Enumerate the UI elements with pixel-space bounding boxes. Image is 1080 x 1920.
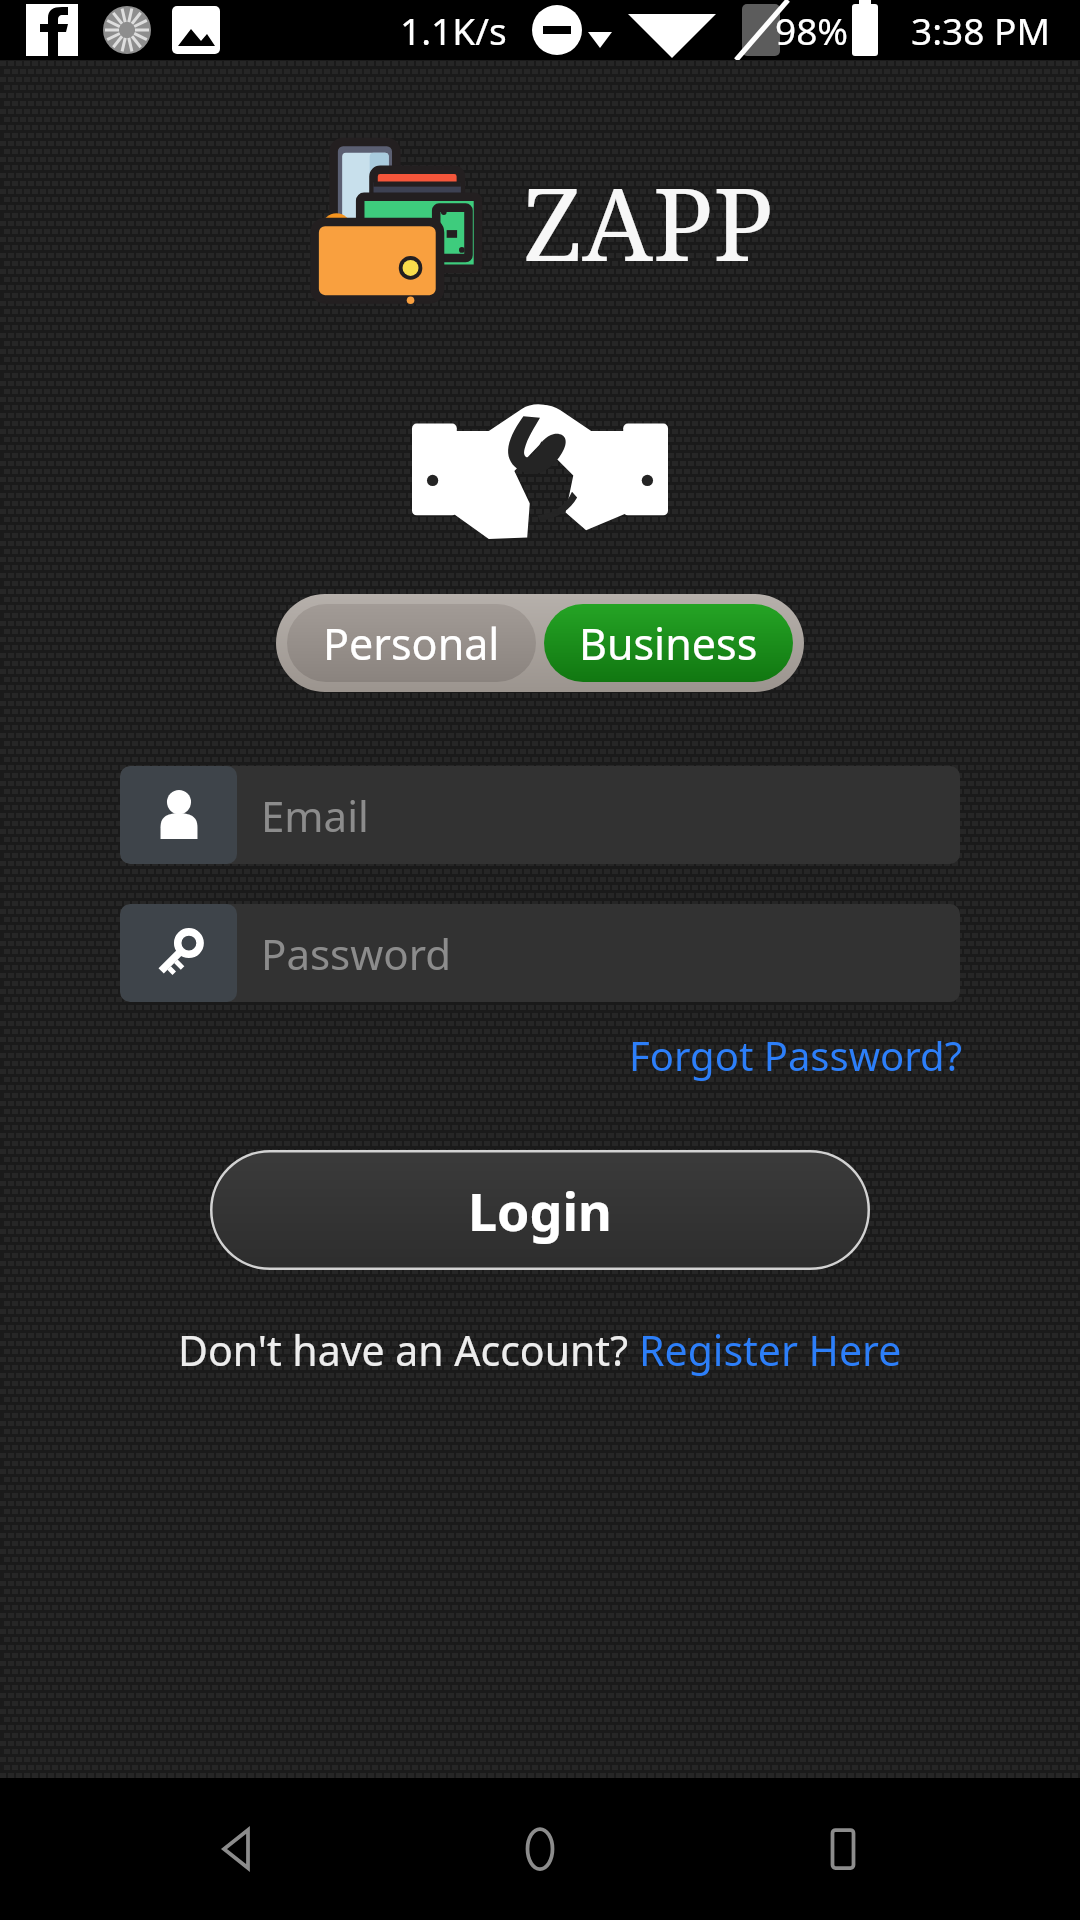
button[interactable]: Personal [287,604,536,682]
button[interactable]: Recent apps [778,1784,908,1914]
staticText: Personal [323,614,500,673]
staticText: Don't have an Account? [178,1322,639,1378]
staticText: Email [261,787,369,844]
staticText: Forgot Password? [629,1028,962,1082]
staticText: 1.1K/s [400,5,507,55]
button[interactable]: Back [173,1784,303,1914]
staticText: Login [468,1175,612,1246]
staticText: Business [579,614,758,673]
button[interactable]: Business [544,604,793,682]
button[interactable]: Forgot Password? [629,1018,1080,1092]
button[interactable]: Register Here [639,1322,902,1378]
button[interactable]: Email field [120,766,960,864]
button[interactable]: Home [475,1784,605,1914]
button[interactable]: Login [210,1150,870,1270]
staticText: ZAPP [523,154,774,290]
staticText: Password [261,925,451,982]
staticText: 3:38 PM [911,5,1050,55]
staticText: Register Here [639,1322,902,1378]
button[interactable]: Password field [120,904,960,1002]
staticText: 98% [775,5,849,55]
